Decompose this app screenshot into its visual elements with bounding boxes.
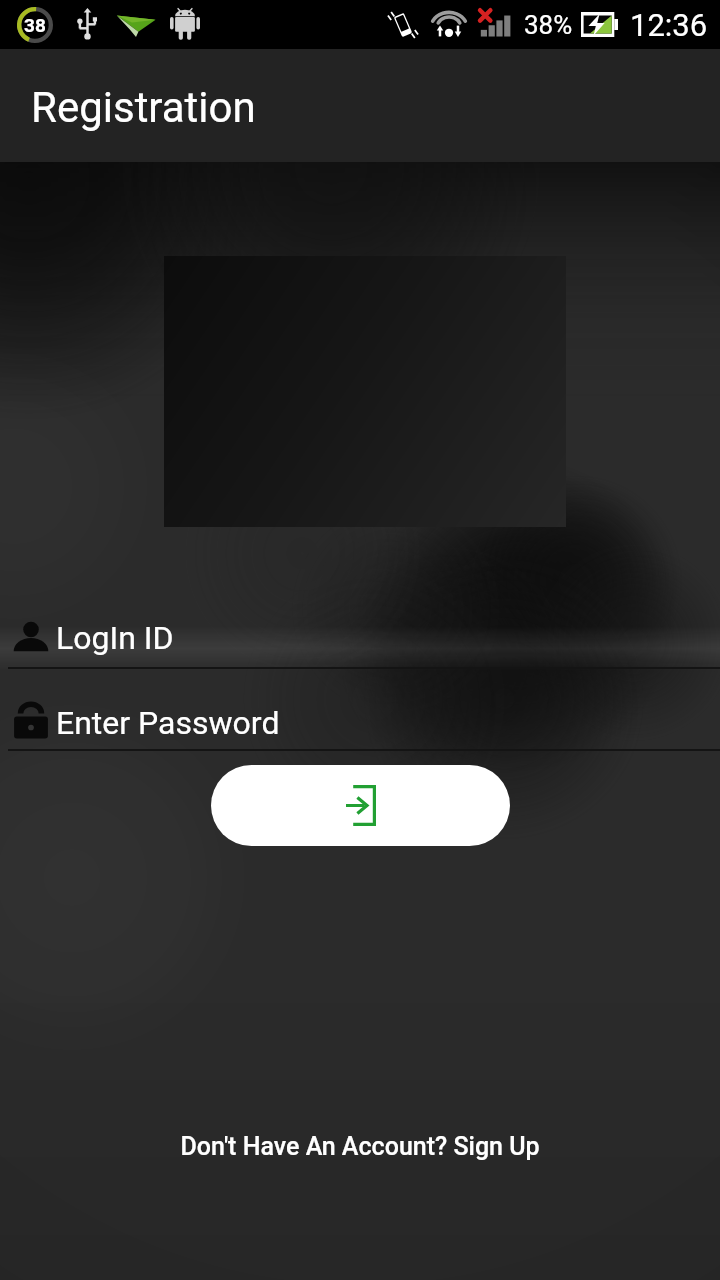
staticText: 12:36 <box>630 7 708 43</box>
staticText: Registration <box>31 83 256 132</box>
button[interactable]: Don't Have An Account? Sign Up <box>164 1126 556 1167</box>
staticText: 38% <box>524 10 573 40</box>
staticText: Enter Password <box>56 704 280 742</box>
staticText: 38 <box>24 14 46 36</box>
button[interactable]: Login <box>211 765 510 846</box>
button[interactable]: LogIn ID <box>0 587 720 669</box>
staticText: LogIn ID <box>56 619 174 657</box>
button[interactable]: Enter Password <box>0 669 720 751</box>
